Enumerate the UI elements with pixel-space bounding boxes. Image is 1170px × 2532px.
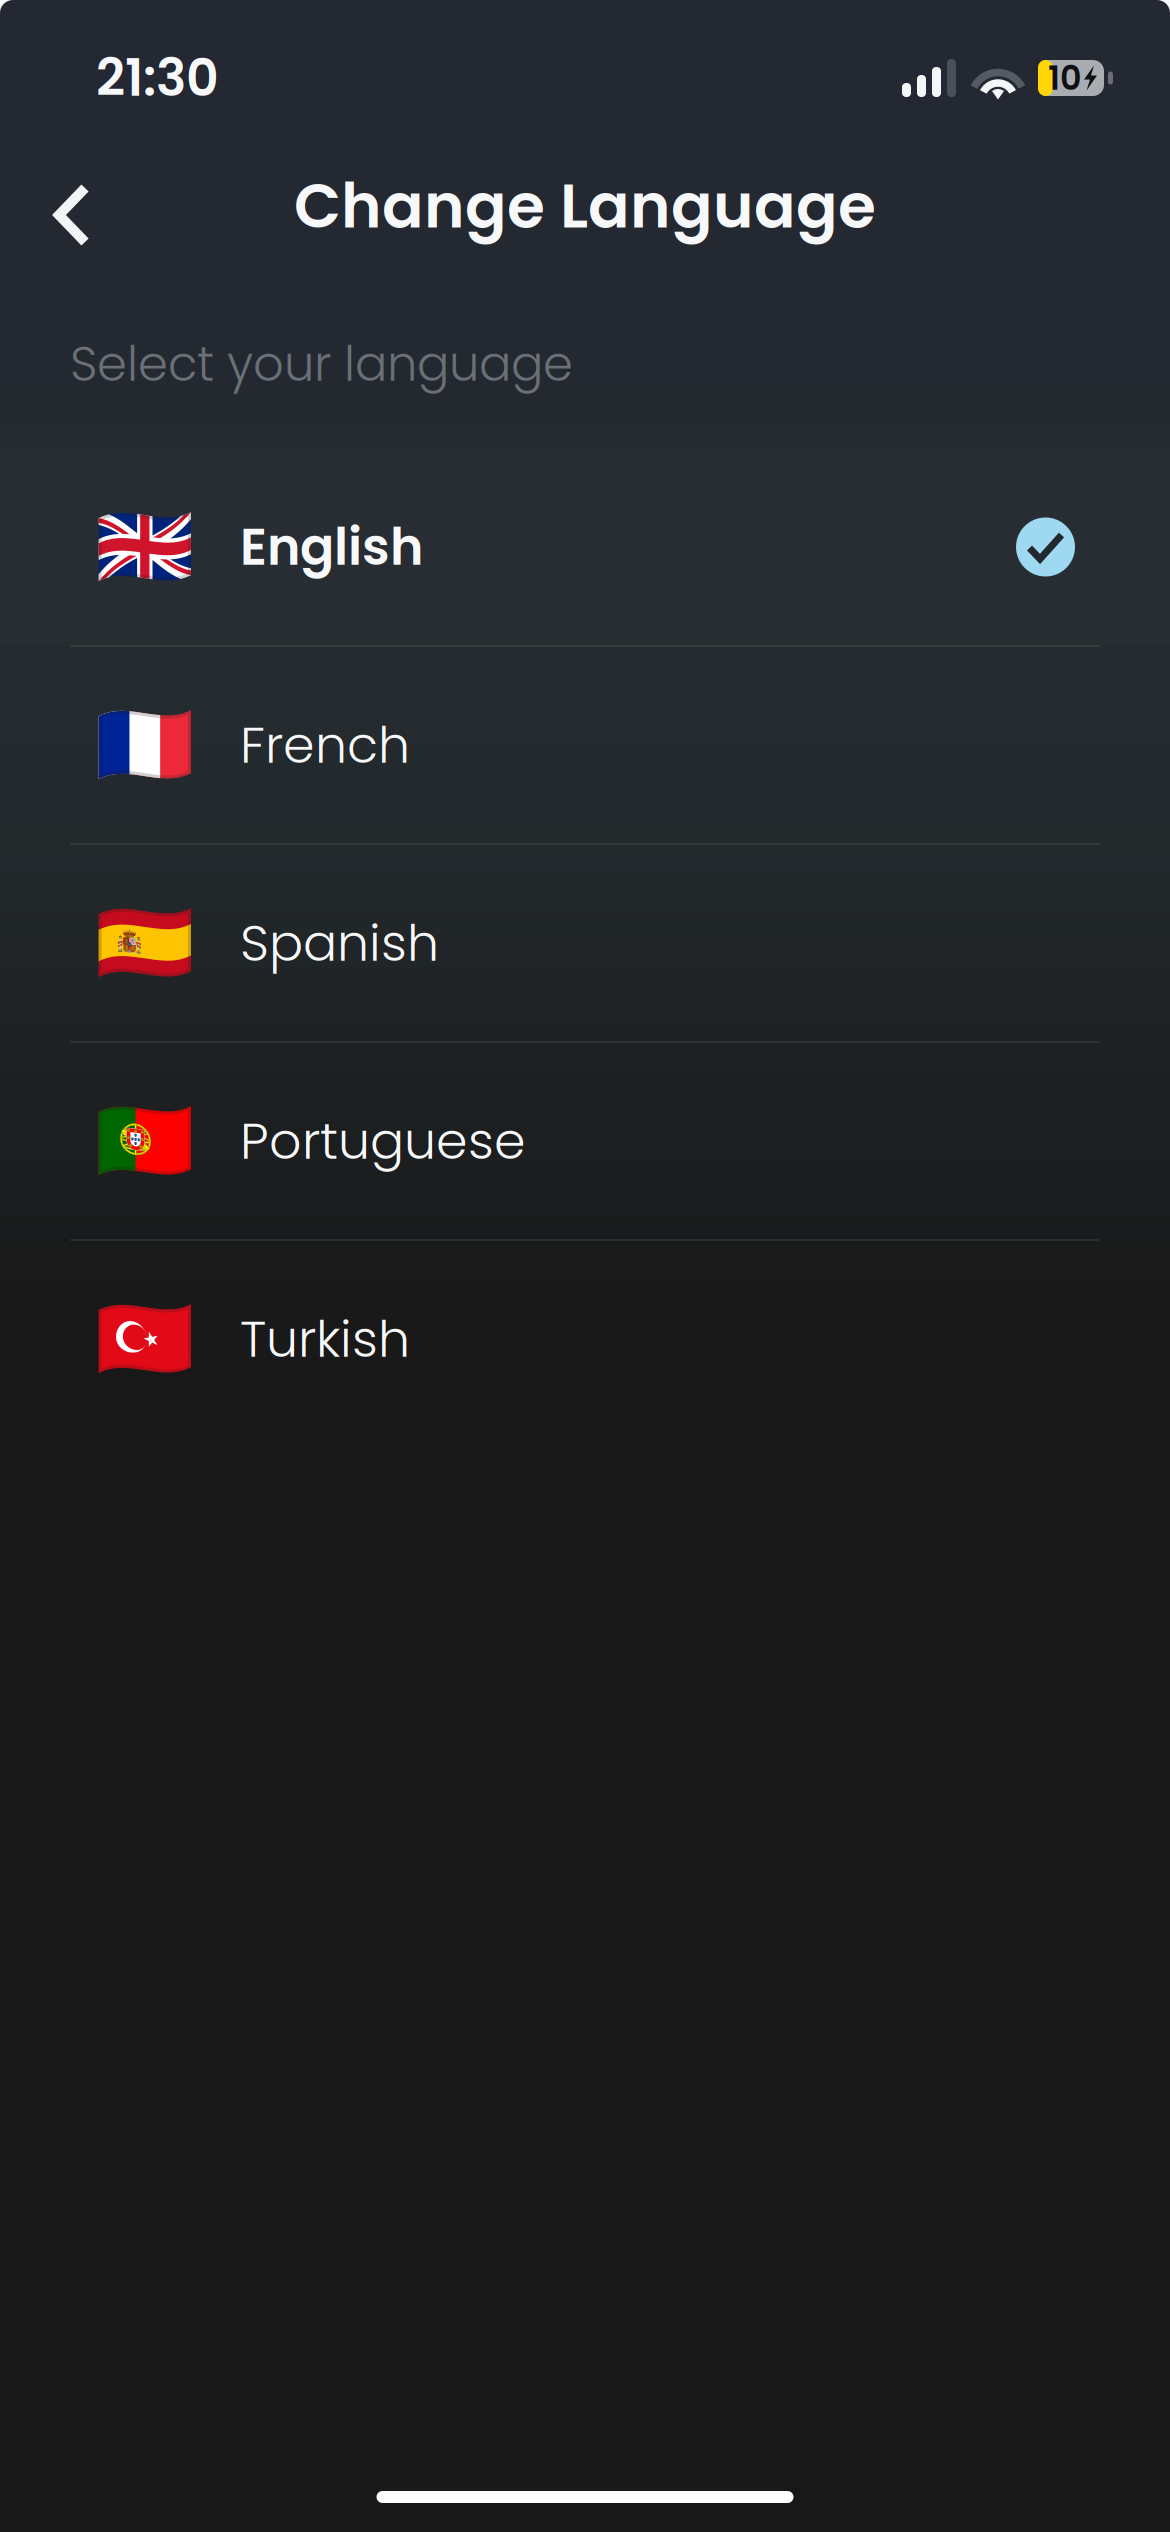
button[interactable]: 🇬🇧 <box>0 448 1170 646</box>
button[interactable]: Back <box>0 146 126 266</box>
staticText: Change Language <box>294 163 876 249</box>
staticText: Spanish <box>240 907 439 978</box>
button[interactable]: 🇵🇹 <box>0 1042 1170 1240</box>
staticText: 🇵🇹 <box>95 1094 195 1188</box>
staticText: 🇹🇷 <box>95 1292 195 1386</box>
staticText: 10 <box>1048 55 1082 101</box>
button[interactable]: 🇫🇷 <box>0 646 1170 844</box>
staticText: Portuguese <box>240 1105 526 1176</box>
staticText: 🇪🇸 <box>95 896 195 990</box>
staticText: Turkish <box>240 1303 410 1374</box>
staticText: English <box>240 511 423 582</box>
staticText: 21:30 <box>96 42 219 113</box>
button[interactable]: 🇪🇸 <box>0 844 1170 1042</box>
staticText: Select your language <box>70 330 573 398</box>
staticText: 🇫🇷 <box>95 698 195 792</box>
button[interactable]: 🇹🇷 <box>0 1240 1170 1438</box>
staticText: 🇬🇧 <box>95 500 195 594</box>
staticText: French <box>240 709 410 780</box>
